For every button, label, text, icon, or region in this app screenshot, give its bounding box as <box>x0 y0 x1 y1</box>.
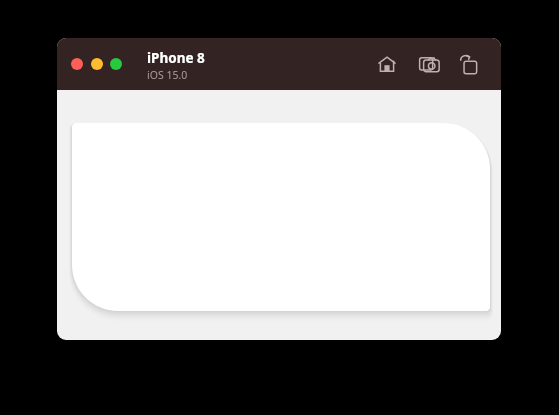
button[interactable]: Screenshot <box>416 51 442 77</box>
button[interactable]: Rotate <box>456 51 482 77</box>
button[interactable]: Minimise <box>91 58 103 70</box>
button[interactable]: Close <box>71 58 83 70</box>
button[interactable]: Home <box>374 51 400 77</box>
button[interactable]: Maximise <box>110 58 122 70</box>
staticText: iOS 15.0 <box>147 68 188 82</box>
staticText: iPhone 8 <box>147 49 205 67</box>
